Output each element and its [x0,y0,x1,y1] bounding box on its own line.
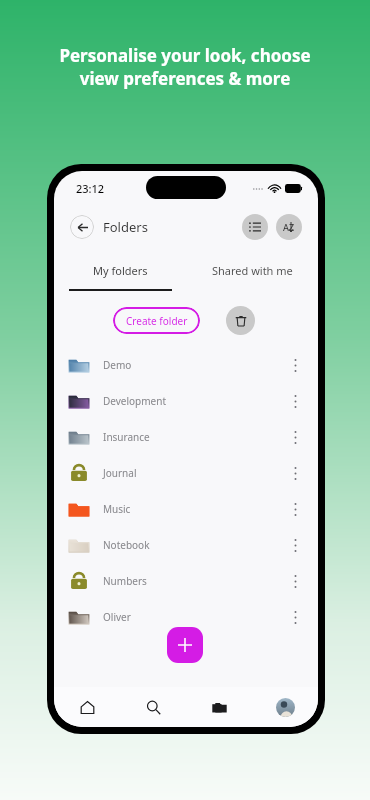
staticText: AZ [283,221,295,233]
staticText: Music [103,502,131,516]
staticText: Oliver [103,610,131,624]
button[interactable]: More options [286,351,304,379]
button[interactable]: Oliver [54,599,318,635]
button[interactable]: View mode [242,214,268,240]
button[interactable]: Music [54,491,318,527]
button[interactable]: Back [70,215,94,239]
staticText: Shared with me [212,263,293,278]
staticText: My folders [93,263,148,278]
button[interactable]: Sort A to Z [276,214,302,240]
staticText: Personalise your look, choose view prefe… [20,44,350,90]
button[interactable]: Profile [252,687,318,727]
button[interactable]: My folders [54,257,186,284]
button[interactable]: More options [286,423,304,451]
button[interactable]: Demo [54,347,318,383]
button[interactable]: More options [286,387,304,415]
staticText: 23:12 [76,181,105,196]
staticText: Demo [103,358,132,372]
button[interactable]: Search [120,687,186,727]
button[interactable]: Home [54,687,120,727]
button[interactable]: Shared with me [186,257,318,284]
staticText: Folders [103,218,148,236]
staticText: Notebook [103,538,150,552]
button[interactable]: Notebook [54,527,318,563]
staticText: Journal [103,466,137,480]
staticText: Insurance [103,430,150,444]
button[interactable]: Add [167,627,203,663]
button[interactable]: More options [286,459,304,487]
staticText: Numbers [103,574,147,588]
staticText: Development [103,394,167,408]
button[interactable]: Development [54,383,318,419]
button[interactable]: Folders [186,687,252,727]
button[interactable]: Journal [54,455,318,491]
button[interactable]: Insurance [54,419,318,455]
button[interactable]: More options [286,495,304,523]
button[interactable]: Create folder [113,307,200,334]
button[interactable]: Numbers [54,563,318,599]
button[interactable]: Delete [226,306,255,335]
button[interactable]: More options [286,603,304,631]
button[interactable]: More options [286,567,304,595]
button[interactable]: More options [286,531,304,559]
staticText: Create folder [126,314,188,328]
